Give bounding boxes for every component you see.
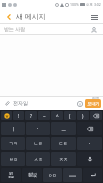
- button[interactable]: ㅅㅎ: [26, 152, 50, 166]
- button[interactable]: Enter: [83, 168, 102, 182]
- button[interactable]: Back: [3, 11, 14, 22]
- button[interactable]: ^: [51, 111, 63, 120]
- button[interactable]: ·: [26, 122, 50, 135]
- button[interactable]: (: [64, 111, 76, 120]
- staticText: 획추가 쌍자음: [28, 172, 37, 178]
- staticText: ㄱㅋ: [9, 141, 18, 146]
- staticText: !#1 한글: [8, 172, 14, 179]
- staticText: 100%: [70, 2, 79, 7]
- staticText: ?: [30, 113, 32, 119]
- staticText: 새 메시지: [16, 12, 46, 22]
- button[interactable]: ·: [77, 137, 102, 150]
- button[interactable]: 보내기: [85, 99, 101, 108]
- staticText: ·: [37, 125, 39, 132]
- button[interactable]: ㅈㅊ: [51, 152, 76, 166]
- staticText: ㅈㅊ: [59, 157, 68, 162]
- button[interactable]: ㄷㅌ: [51, 137, 76, 150]
- staticText: ㄴㄹ: [34, 141, 43, 146]
- staticText: ·: [89, 140, 91, 147]
- staticText: ㄷㅌ: [59, 141, 68, 146]
- button[interactable]: Attach: [2, 98, 12, 108]
- button[interactable]: ㅡ: [51, 122, 76, 135]
- staticText: ~: [43, 113, 46, 119]
- staticText: ㅡ: [61, 126, 66, 132]
- button[interactable]: Add contact: [89, 25, 99, 35]
- staticText: 오후 3:02: [86, 2, 101, 7]
- button[interactable]: More options: [88, 11, 100, 23]
- button[interactable]: ㅇㅁ: [43, 168, 62, 182]
- staticText: ㅅㅎ: [34, 157, 43, 162]
- button[interactable]: 획추가 쌍자음: [22, 168, 42, 182]
- button[interactable]: ㄱㅋ: [1, 137, 25, 150]
- staticText: ): [82, 113, 84, 119]
- staticText: ^: [56, 113, 59, 119]
- button[interactable]: ㅂㅍ: [1, 152, 25, 166]
- staticText: (: [69, 113, 71, 119]
- button[interactable]: Delete: [77, 122, 102, 135]
- staticText: ㅇㅁ: [48, 173, 57, 178]
- staticText: ㅣ: [11, 126, 16, 132]
- staticText: 받는 사람: [4, 26, 26, 33]
- button[interactable]: ~: [38, 111, 50, 120]
- staticText: !: [18, 113, 20, 119]
- button[interactable]: ㅣ: [1, 122, 25, 135]
- button[interactable]: !#1 한글: [1, 168, 21, 182]
- button[interactable]: [1, 111, 12, 120]
- button[interactable]: Backspace: [90, 111, 102, 120]
- button[interactable]: ): [77, 111, 89, 120]
- staticText: 45/70: [92, 97, 99, 101]
- button[interactable]: !: [13, 111, 24, 120]
- staticText: 전자일: [13, 100, 28, 106]
- button[interactable]: Voice input: [77, 152, 102, 166]
- staticText: ㅂㅍ: [9, 157, 18, 162]
- staticText: 보내기: [87, 101, 100, 106]
- button[interactable]: Emoji: [75, 99, 84, 108]
- button[interactable]: Space: [63, 168, 82, 182]
- button[interactable]: ?: [25, 111, 37, 120]
- button[interactable]: ㄴㄹ: [26, 137, 50, 150]
